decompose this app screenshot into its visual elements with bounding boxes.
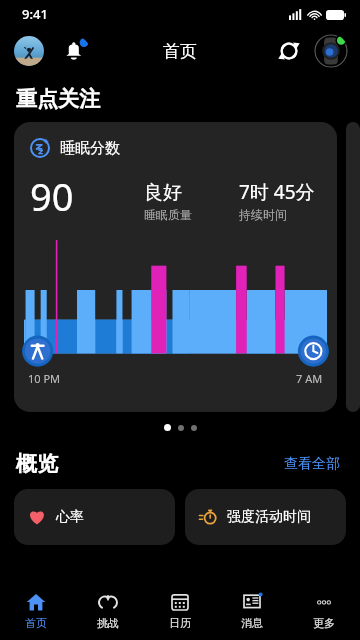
staticText: 消息 (241, 616, 263, 630)
staticText: 良好 (144, 181, 182, 205)
button[interactable]: 日历 (144, 582, 216, 640)
staticText: 查看全部 (284, 455, 340, 473)
staticText: 强度活动时间 (227, 508, 311, 526)
staticText: 首页 (25, 616, 47, 630)
staticText: 7 AM (296, 371, 323, 386)
button[interactable]: 查看全部 (280, 451, 344, 477)
staticText: 7时 45分 (239, 179, 315, 205)
button[interactable] (346, 122, 360, 412)
staticText: 持续时间 (239, 207, 287, 222)
staticText: 9:41 (22, 5, 48, 23)
staticText: 心率 (56, 508, 84, 526)
button[interactable]: Profile (14, 36, 44, 66)
staticText: 概览 (16, 451, 58, 477)
staticText: 日历 (169, 616, 191, 630)
staticText: 睡眠分数 (60, 139, 120, 158)
button[interactable]: 更多 (288, 582, 360, 640)
button[interactable]: 消息 (216, 582, 288, 640)
button[interactable]: 睡眠分数 (14, 122, 337, 412)
staticText: 更多 (313, 616, 335, 630)
button[interactable]: Sync (274, 36, 304, 66)
staticText: 10 PM (28, 371, 61, 386)
staticText: 90 (30, 170, 74, 222)
button[interactable]: 心率 (14, 489, 175, 545)
button[interactable]: 挑战 (72, 582, 144, 640)
button[interactable]: Notifications (60, 36, 90, 66)
staticText: 睡眠质量 (144, 207, 192, 222)
button[interactable]: 首页 (0, 582, 72, 640)
staticText: 首页 (163, 41, 197, 62)
button[interactable]: 强度活动时间 (185, 489, 346, 545)
staticText: 挑战 (97, 616, 119, 630)
staticText: 重点关注 (16, 86, 100, 112)
button[interactable]: Watch device (314, 34, 348, 68)
